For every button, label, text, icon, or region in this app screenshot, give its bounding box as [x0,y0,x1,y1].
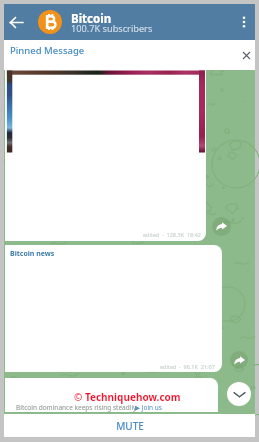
button[interactable]: Bitcoin dominance keeps rising steadily [5,378,218,412]
button[interactable]: Close pinned message [236,45,256,65]
button[interactable]: More options [233,4,255,40]
staticText: © Techniquehow.com [74,390,181,404]
staticText: edited · 128.3K 18:42 [143,231,201,238]
button[interactable]: Back [4,4,29,40]
button[interactable]: Pinned Message [4,40,255,70]
button[interactable]: edited · 128.3K 18:42 [5,70,206,241]
button[interactable]: Scroll to bottom [227,382,251,406]
staticText: Bitcoin news [10,249,55,259]
button[interactable]: MUTE [4,414,255,437]
staticText: ▶ Join us [135,403,162,412]
staticText: MUTE [116,419,144,433]
button[interactable]: Bitcoin news [5,245,222,372]
button[interactable]: Forward [230,351,248,369]
staticText: Bitcoin dominance keeps rising steadily [16,403,139,412]
staticText: edited · 96.1K 21:07 [160,363,215,370]
staticText: 100.7K subscribers [71,22,153,35]
button[interactable]: Forward [212,217,231,236]
staticText: Pinned Message [10,44,85,57]
staticText: Bitcoin [71,11,112,27]
